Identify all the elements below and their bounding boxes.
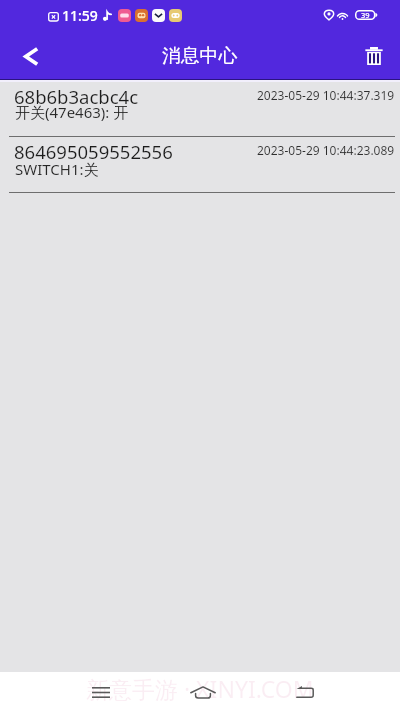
- staticText: 2023-05-29 10:44:23.089: [257, 142, 395, 158]
- staticText: 新意手游 · XINYI.COM: [86, 673, 314, 704]
- button[interactable]: 864695059552556: [0, 137, 400, 192]
- button[interactable]: Recent apps: [82, 673, 120, 711]
- staticText: 11:59: [62, 6, 98, 25]
- staticText: 消息中心: [162, 44, 238, 68]
- staticText: 864695059552556: [14, 139, 173, 164]
- staticText: 68b6b3acbc4c: [14, 84, 139, 109]
- button[interactable]: Back: [286, 673, 324, 711]
- staticText: 2023-05-29 10:44:37.319: [257, 87, 395, 103]
- button[interactable]: Home: [184, 673, 222, 711]
- staticText: 开关(47e463): 开: [15, 102, 129, 122]
- staticText: 39: [361, 10, 370, 20]
- button[interactable]: Back: [7, 32, 55, 80]
- button[interactable]: 68b6b3acbc4c: [0, 82, 400, 136]
- staticText: SWITCH1:关: [15, 159, 99, 179]
- button[interactable]: Delete all messages: [350, 32, 398, 80]
